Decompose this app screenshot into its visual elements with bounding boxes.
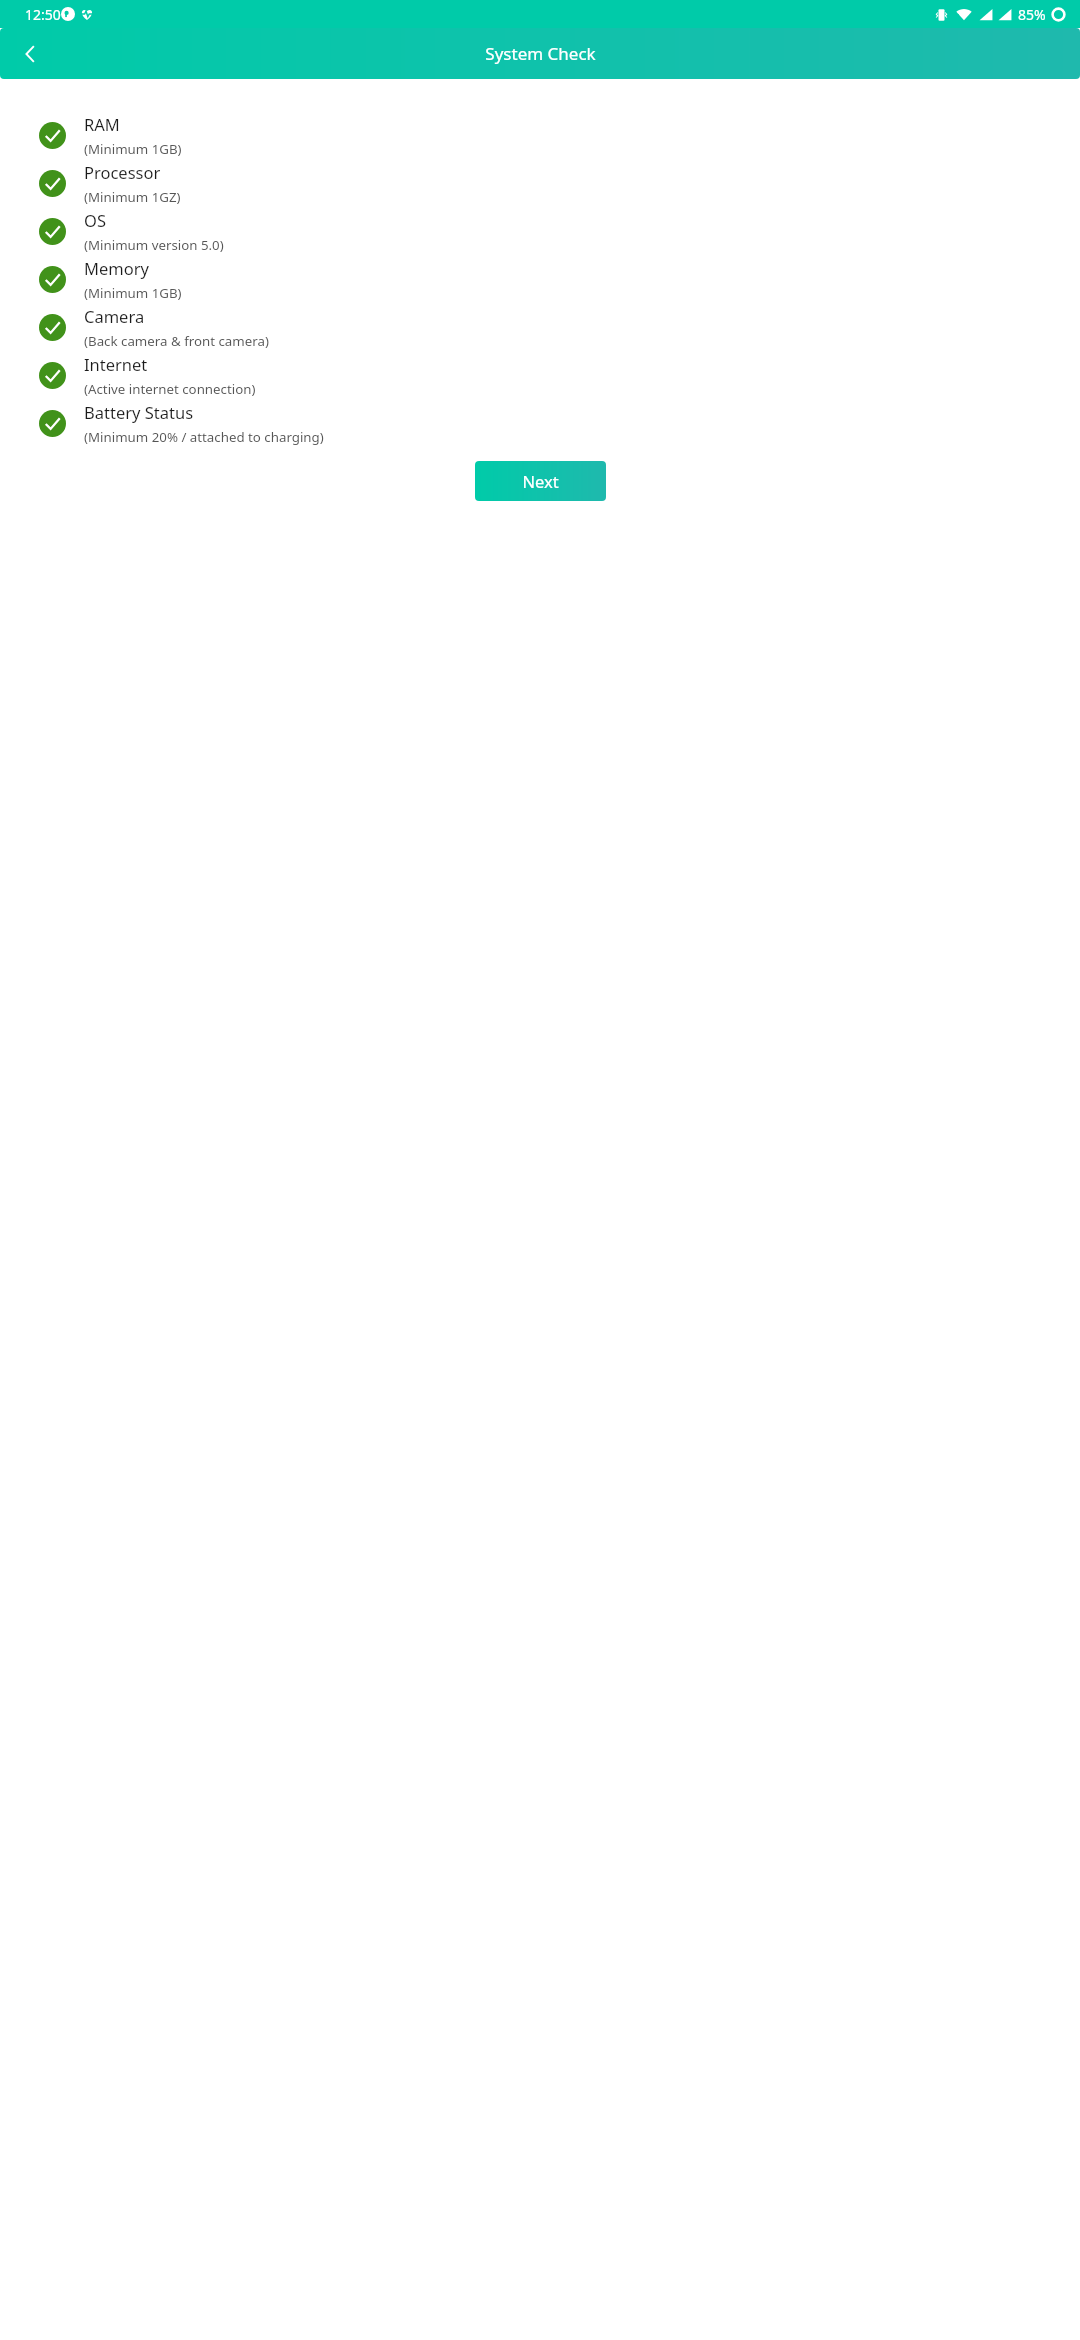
staticText: Camera xyxy=(84,305,145,327)
staticText: RAM xyxy=(84,113,120,135)
button[interactable]: Camera xyxy=(0,303,1080,351)
staticText: OS xyxy=(84,209,106,231)
staticText: 85% xyxy=(1018,5,1046,24)
staticText: (Minimum 1GB) xyxy=(84,140,182,158)
staticText: System Check xyxy=(485,42,596,65)
button[interactable]: Memory xyxy=(0,255,1080,303)
staticText: (Minimum 1GZ) xyxy=(84,188,181,206)
button[interactable]: Back xyxy=(8,32,52,76)
button[interactable]: Battery Status xyxy=(0,399,1080,447)
button[interactable]: OS xyxy=(0,207,1080,255)
staticText: Battery Status xyxy=(84,401,194,423)
staticText: Next xyxy=(522,470,559,492)
button[interactable]: Internet xyxy=(0,351,1080,399)
staticText: (Active internet connection) xyxy=(84,380,256,398)
button[interactable]: RAM xyxy=(0,111,1080,159)
staticText: Internet xyxy=(84,353,148,375)
staticText: 12:50 xyxy=(25,5,61,24)
button[interactable]: Processor xyxy=(0,159,1080,207)
staticText: (Minimum 1GB) xyxy=(84,284,182,302)
staticText: (Minimum version 5.0) xyxy=(84,236,224,254)
staticText: Memory xyxy=(84,257,149,279)
staticText: (Back camera & front camera) xyxy=(84,332,269,350)
staticText: Processor xyxy=(84,161,161,183)
staticText: (Minimum 20% / attached to charging) xyxy=(84,428,324,446)
button[interactable]: Next xyxy=(475,461,606,501)
